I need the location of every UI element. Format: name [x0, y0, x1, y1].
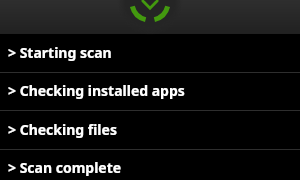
button[interactable]: Scanning — [113, 0, 187, 39]
staticText: > Checking files — [8, 120, 117, 139]
button[interactable]: > Starting scan — [0, 34, 300, 73]
staticText: > Starting scan — [8, 43, 112, 62]
staticText: > Scan complete — [8, 158, 122, 177]
button[interactable]: > Checking installed apps — [0, 72, 300, 111]
staticText: > Checking installed apps — [8, 81, 185, 100]
button[interactable]: > Scan complete — [0, 149, 300, 180]
button[interactable]: > Checking files — [0, 111, 300, 150]
